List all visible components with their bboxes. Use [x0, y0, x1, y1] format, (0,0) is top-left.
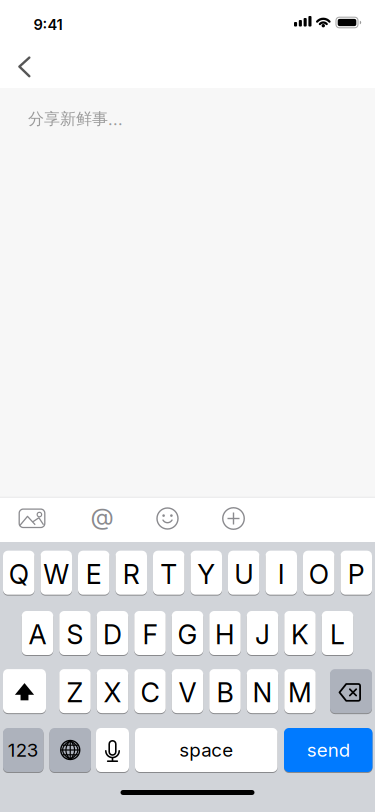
staticText: B — [216, 677, 233, 708]
button[interactable]: H — [209, 610, 241, 656]
button[interactable]: 123 — [3, 727, 43, 773]
staticText: T — [160, 558, 177, 590]
button[interactable]: L — [322, 610, 353, 656]
staticText: send — [307, 739, 350, 761]
staticText: W — [43, 558, 69, 590]
staticText: 123 — [8, 739, 39, 761]
button[interactable] — [211, 497, 255, 540]
staticText: R — [123, 558, 140, 590]
button[interactable]: space — [135, 727, 277, 773]
button[interactable]: Y — [190, 550, 222, 596]
button[interactable]: K — [284, 610, 316, 656]
staticText: Q — [9, 558, 29, 590]
button[interactable]: T — [153, 550, 184, 596]
button[interactable]: J — [247, 610, 278, 656]
button[interactable] — [49, 727, 91, 773]
button[interactable]: A — [22, 610, 53, 656]
staticText: K — [291, 619, 309, 650]
staticText: J — [255, 619, 270, 650]
staticText: @ — [90, 502, 113, 530]
staticText: S — [66, 619, 83, 650]
staticText: Y — [197, 558, 215, 590]
staticText: F — [142, 619, 157, 650]
button[interactable]: C — [134, 668, 166, 714]
button[interactable]: M — [284, 668, 316, 714]
button[interactable]: send — [284, 727, 372, 773]
staticText: 9:41 — [33, 16, 62, 33]
staticText: M — [288, 677, 312, 708]
staticText: I — [278, 558, 285, 590]
staticText: A — [28, 619, 46, 650]
button[interactable]: Z — [59, 668, 91, 714]
staticText: P — [348, 558, 365, 590]
button[interactable] — [10, 496, 54, 540]
button[interactable]: B — [209, 668, 241, 714]
staticText: L — [330, 619, 345, 650]
staticText: space — [179, 739, 233, 761]
staticText: C — [140, 677, 159, 708]
button[interactable]: P — [340, 550, 372, 596]
button[interactable] — [3, 668, 46, 714]
button[interactable]: Q — [3, 550, 34, 596]
staticText: 分享新鲜事... — [28, 109, 123, 129]
staticText: Z — [66, 677, 83, 708]
button[interactable]: S — [59, 610, 91, 656]
button[interactable]: O — [303, 550, 334, 596]
button[interactable]: F — [134, 610, 166, 656]
button[interactable]: U — [228, 550, 259, 596]
button[interactable] — [96, 727, 129, 773]
staticText: U — [234, 558, 253, 590]
button[interactable]: D — [97, 610, 128, 656]
staticText: H — [215, 619, 235, 650]
button[interactable]: X — [97, 668, 128, 714]
staticText: V — [178, 677, 196, 708]
staticText: O — [309, 558, 329, 590]
button[interactable] — [145, 497, 189, 540]
button[interactable] — [330, 668, 372, 714]
button[interactable]: G — [172, 610, 203, 656]
button[interactable]: R — [115, 550, 147, 596]
button[interactable]: @ — [80, 494, 124, 537]
button[interactable]: I — [265, 550, 297, 596]
staticText: N — [252, 677, 272, 708]
staticText: G — [177, 619, 197, 650]
button[interactable]: E — [78, 550, 109, 596]
staticText: X — [103, 677, 121, 708]
button[interactable]: V — [172, 668, 203, 714]
button[interactable]: W — [40, 550, 72, 596]
button[interactable] — [2, 44, 46, 88]
staticText: D — [103, 619, 122, 650]
staticText: E — [86, 558, 102, 590]
button[interactable]: N — [247, 668, 278, 714]
